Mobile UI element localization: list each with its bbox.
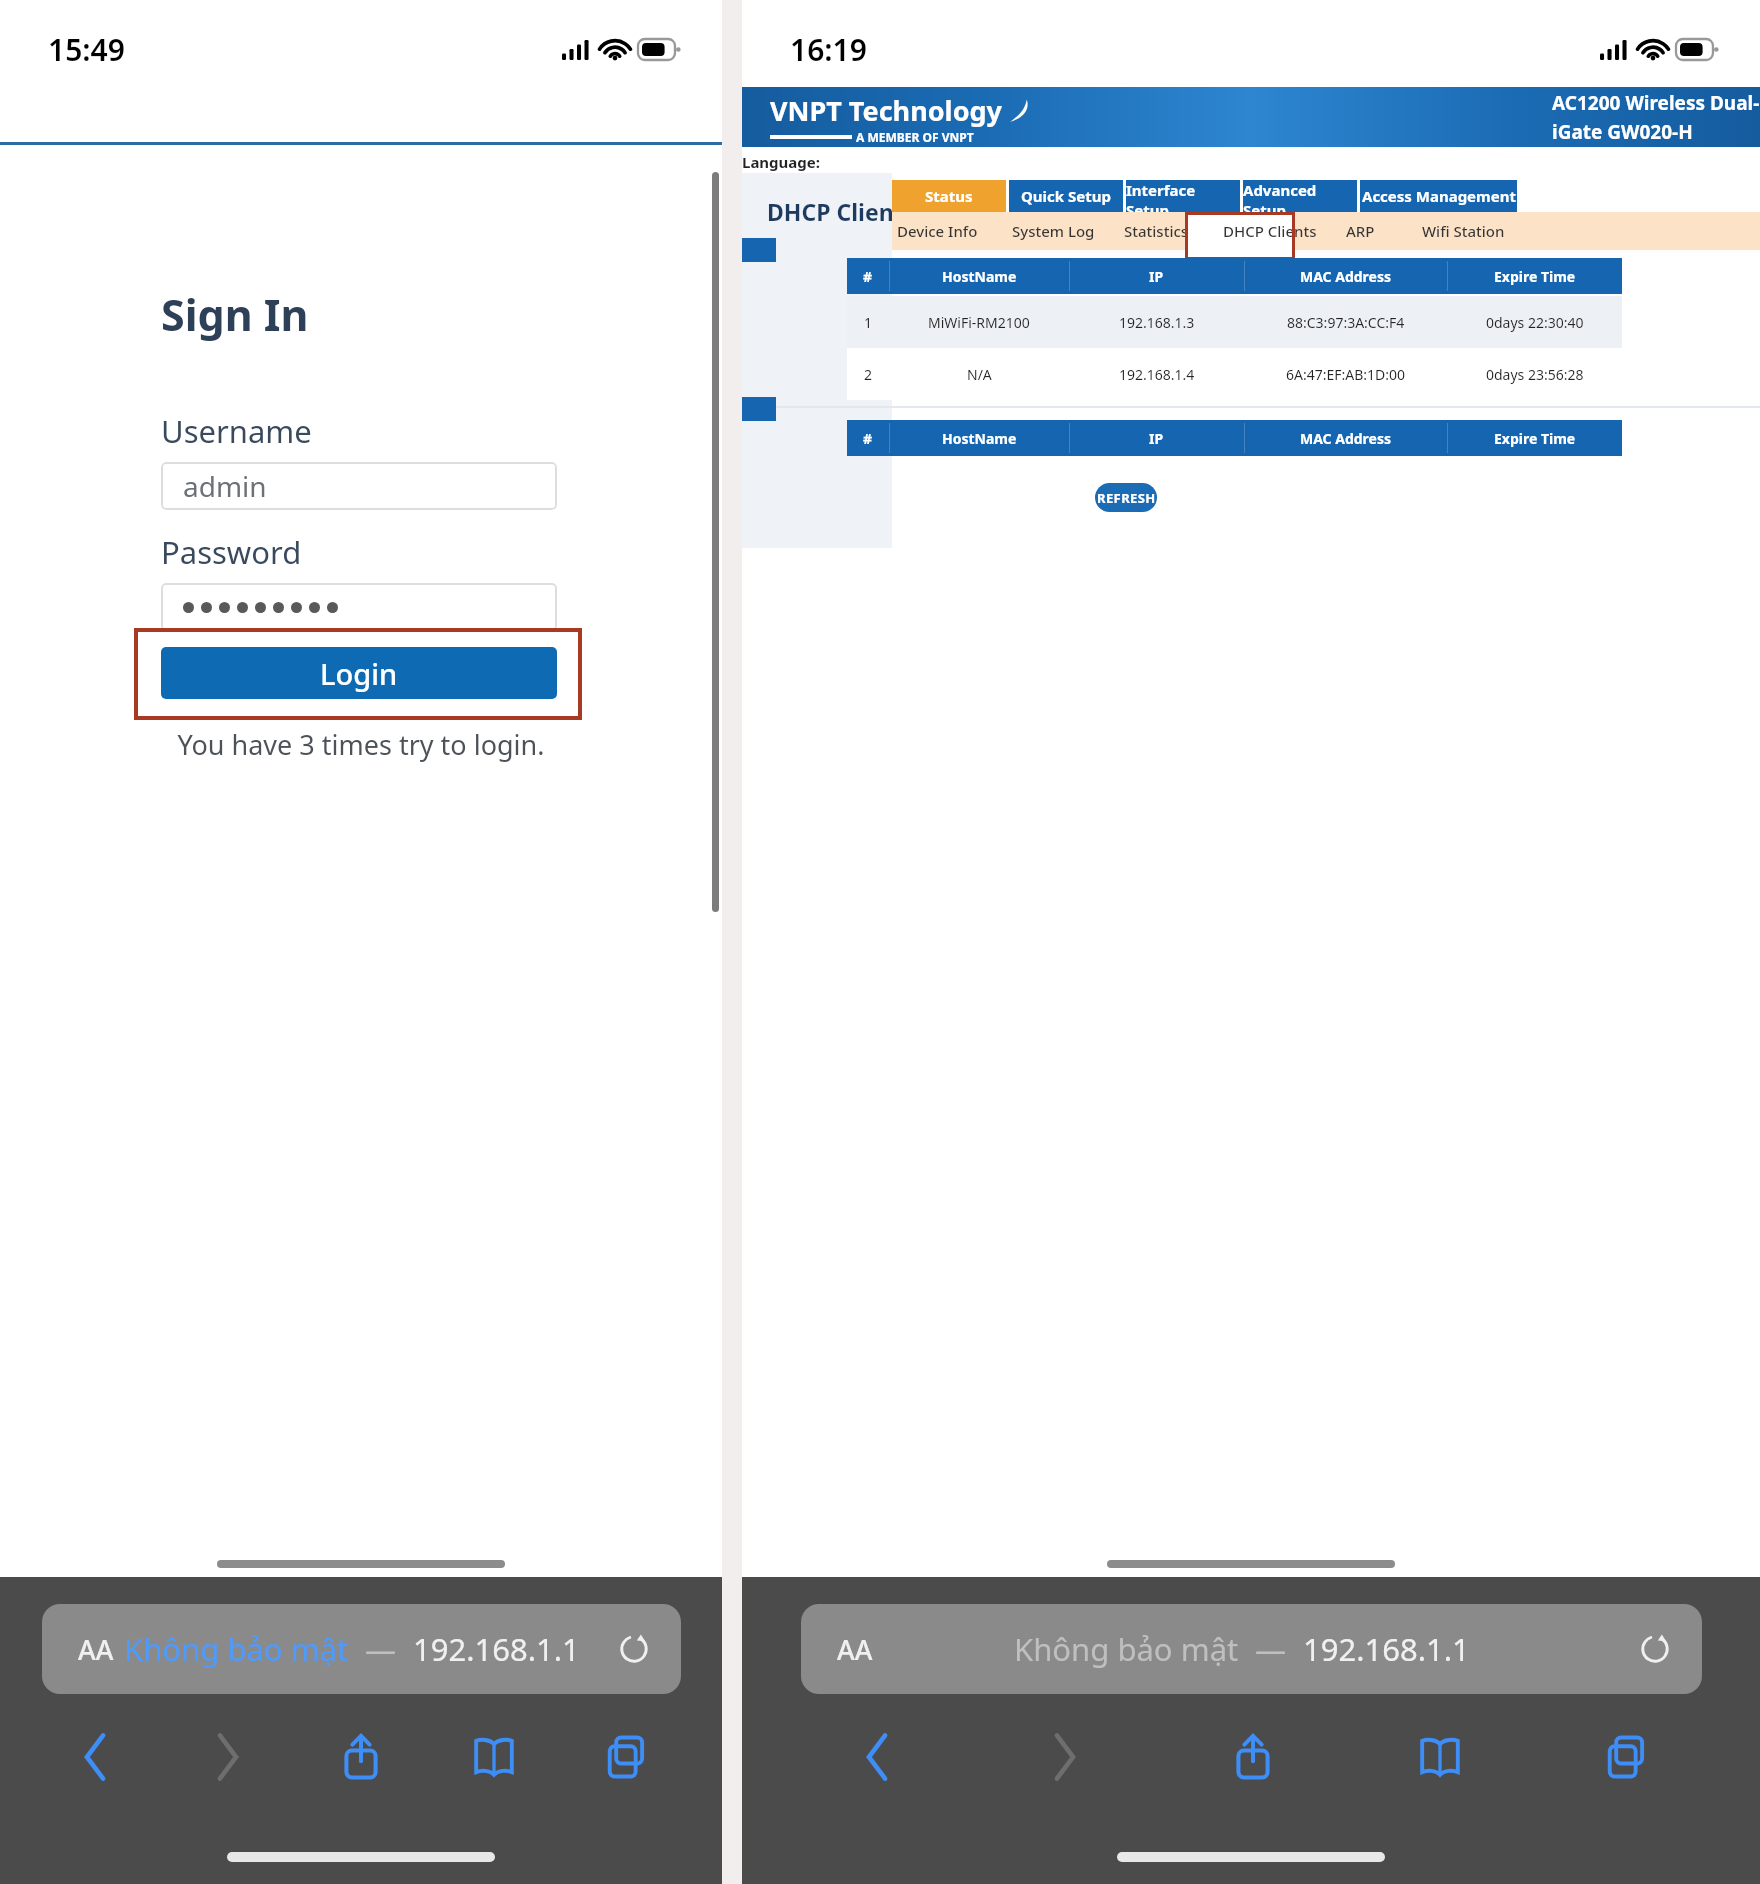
button[interactable]: Statistics: [1124, 212, 1189, 250]
staticText: You have 3 times try to login.: [0, 726, 722, 763]
button[interactable]: Reload: [613, 1628, 655, 1670]
staticText: admin: [183, 467, 267, 505]
staticText: Language:: [742, 152, 820, 172]
button[interactable]: AA: [42, 1604, 681, 1694]
staticText: REFRESH: [1097, 489, 1156, 507]
button[interactable]: Bookmarks: [1346, 1712, 1533, 1802]
staticText: HostName: [942, 267, 1017, 286]
staticText: Không bảo mật: [124, 1628, 349, 1670]
button[interactable]: Forward: [971, 1712, 1159, 1802]
staticText: —: [1239, 1628, 1303, 1670]
staticText: Interface Setup: [1126, 180, 1240, 212]
staticText: 16:19: [790, 29, 867, 70]
staticText: 192.168.1.4: [1119, 365, 1195, 384]
staticText: VNPT Technology: [770, 92, 1002, 129]
button[interactable]: System Log: [1012, 212, 1095, 250]
staticText: #: [863, 267, 873, 286]
button[interactable]: Wifi Station: [1422, 212, 1505, 250]
button[interactable]: Bookmarks: [427, 1712, 560, 1802]
staticText: Device Info: [897, 221, 978, 241]
staticText: Login: [320, 654, 398, 693]
button[interactable]: ARP: [1346, 212, 1375, 250]
staticText: 192.168.1.1: [1303, 1628, 1470, 1670]
staticText: 0days 22:30:40: [1486, 313, 1584, 332]
staticText: #: [863, 429, 873, 448]
button[interactable]: Advanced Setup: [1243, 180, 1357, 212]
staticText: AA: [78, 1631, 114, 1668]
staticText: System Log: [1012, 221, 1095, 241]
staticText: 0days 23:56:28: [1486, 365, 1584, 384]
staticText: IP: [1149, 429, 1164, 448]
button[interactable]: Share: [294, 1712, 427, 1802]
staticText: 192.168.1.3: [1119, 313, 1195, 332]
button[interactable]: Interface Setup: [1126, 180, 1240, 212]
button[interactable]: AA: [801, 1604, 1702, 1694]
staticText: AC1200 Wireless Dual-b: [1552, 90, 1760, 116]
staticText: Wifi Station: [1422, 221, 1505, 241]
staticText: Quick Setup: [1021, 186, 1112, 206]
staticText: Expire Time: [1494, 429, 1576, 448]
staticText: 1: [864, 313, 873, 332]
button[interactable]: Reload: [1634, 1628, 1676, 1670]
staticText: Statistics: [1124, 221, 1189, 241]
button[interactable]: Back: [29, 1712, 161, 1802]
staticText: Advanced Setup: [1243, 180, 1357, 212]
button[interactable]: Quick Setup: [1009, 180, 1123, 212]
button[interactable]: REFRESH: [1095, 483, 1157, 512]
staticText: Username: [161, 410, 312, 452]
staticText: DHCP Clients: [767, 196, 916, 227]
button[interactable]: Status: [892, 180, 1006, 212]
staticText: MiWiFi-RM2100: [928, 313, 1030, 332]
staticText: DHCP Clients: [1223, 221, 1317, 241]
staticText: Expire Time: [1494, 267, 1576, 286]
staticText: 192.168.1.1: [413, 1628, 580, 1670]
button[interactable]: Login: [161, 647, 557, 699]
staticText: 88:C3:97:3A:CC:F4: [1287, 313, 1405, 332]
staticText: —: [349, 1628, 413, 1670]
button[interactable]: Access Management: [1360, 180, 1517, 212]
staticText: ARP: [1346, 221, 1375, 241]
staticText: Password: [161, 531, 302, 573]
staticText: MAC Address: [1300, 267, 1392, 286]
button[interactable]: Share: [1159, 1712, 1346, 1802]
button[interactable]: [161, 583, 557, 631]
staticText: N/A: [967, 365, 992, 384]
staticText: HostName: [942, 429, 1017, 448]
staticText: 6A:47:EF:AB:1D:00: [1286, 365, 1406, 384]
button[interactable]: Tabs: [560, 1712, 693, 1802]
staticText: 2: [864, 365, 873, 384]
staticText: Access Management: [1362, 186, 1516, 206]
staticText: AA: [837, 1631, 873, 1668]
staticText: A MEMBER OF VNPT: [856, 129, 974, 145]
staticText: Không bảo mật: [1014, 1628, 1239, 1670]
staticText: MAC Address: [1300, 429, 1392, 448]
staticText: Sign In: [161, 285, 309, 344]
staticText: iGate GW020-H: [1552, 119, 1693, 145]
button[interactable]: admin: [161, 462, 557, 510]
button[interactable]: Back: [783, 1712, 971, 1802]
button[interactable]: Forward: [161, 1712, 294, 1802]
button[interactable]: DHCP Clients: [1223, 212, 1317, 250]
button[interactable]: Device Info: [897, 212, 978, 250]
staticText: Status: [925, 186, 973, 206]
button[interactable]: Tabs: [1533, 1712, 1720, 1802]
staticText: 15:49: [48, 29, 125, 70]
staticText: IP: [1149, 267, 1164, 286]
